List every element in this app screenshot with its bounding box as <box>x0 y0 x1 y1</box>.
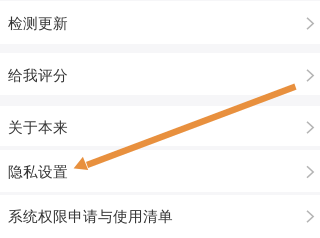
staticText: 系统权限申请与使用清单 <box>8 207 173 225</box>
staticText: 关于本来 <box>8 118 68 136</box>
button[interactable]: 关于本来 <box>0 106 320 146</box>
button[interactable]: 系统权限申请与使用清单 <box>0 195 320 238</box>
button[interactable]: 给我评分 <box>0 53 320 95</box>
staticText: 检测更新 <box>8 14 68 32</box>
staticText: 隐私设置 <box>8 163 68 181</box>
button[interactable]: 隐私设置 <box>0 150 320 192</box>
button[interactable]: 检测更新 <box>0 1 320 44</box>
staticText: 给我评分 <box>8 66 68 84</box>
